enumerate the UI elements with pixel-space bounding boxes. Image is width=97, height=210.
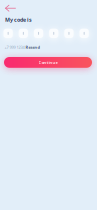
staticText: +7 999 1234 (4, 45, 24, 50)
staticText: Continue (38, 60, 57, 65)
button[interactable]: Continue (4, 57, 92, 68)
button[interactable]: Back (0, 1, 17, 14)
button[interactable]: Resend (26, 45, 41, 50)
staticText: Resend (26, 45, 41, 50)
staticText: My code is (5, 16, 32, 23)
